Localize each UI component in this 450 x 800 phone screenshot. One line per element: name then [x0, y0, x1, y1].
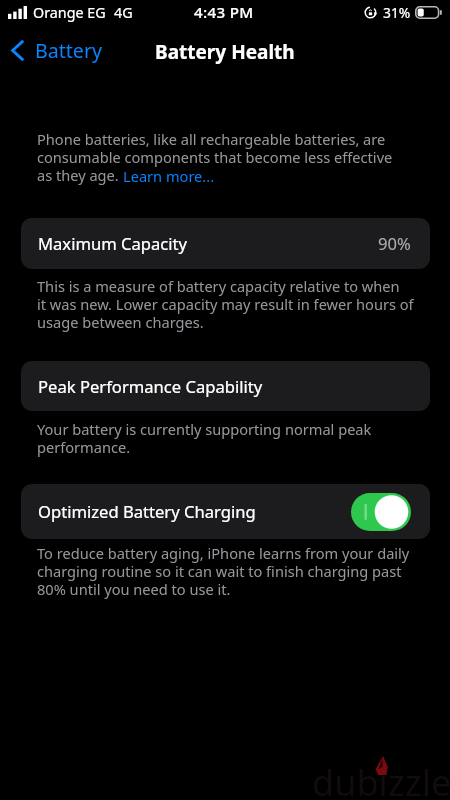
- staticText: Phone batteries, like all rechargeable b…: [37, 131, 393, 185]
- staticText: dubizzle: [312, 758, 450, 800]
- button[interactable]: Optimized Battery Charging: [351, 493, 411, 531]
- staticText: Peak Performance Capability: [38, 375, 263, 398]
- staticText: 4G: [114, 3, 133, 22]
- staticText: Orange EG: [33, 3, 106, 22]
- staticText: Your battery is currently supporting nor…: [37, 421, 372, 457]
- button[interactable]: Learn more...: [123, 168, 215, 186]
- staticText: Optimized Battery Charging: [38, 500, 256, 523]
- staticText: 90%: [378, 232, 411, 255]
- button[interactable]: Optimized Battery Charging: [21, 484, 430, 539]
- button[interactable]: Maximum Capacity: [21, 218, 430, 269]
- staticText: Learn more...: [123, 168, 215, 186]
- staticText: To reduce battery aging, iPhone learns f…: [37, 545, 410, 599]
- staticText: 31%: [383, 3, 411, 22]
- staticText: Battery Health: [155, 39, 295, 65]
- other: Rotation lock: [364, 6, 377, 19]
- staticText: This is a measure of battery capacity re…: [37, 278, 414, 332]
- button[interactable]: Peak Performance Capability: [21, 361, 430, 411]
- staticText: Maximum Capacity: [38, 232, 188, 255]
- staticText: Battery: [35, 37, 103, 64]
- button[interactable]: Battery: [0, 31, 113, 70]
- staticText: 4:43 PM: [194, 2, 254, 23]
